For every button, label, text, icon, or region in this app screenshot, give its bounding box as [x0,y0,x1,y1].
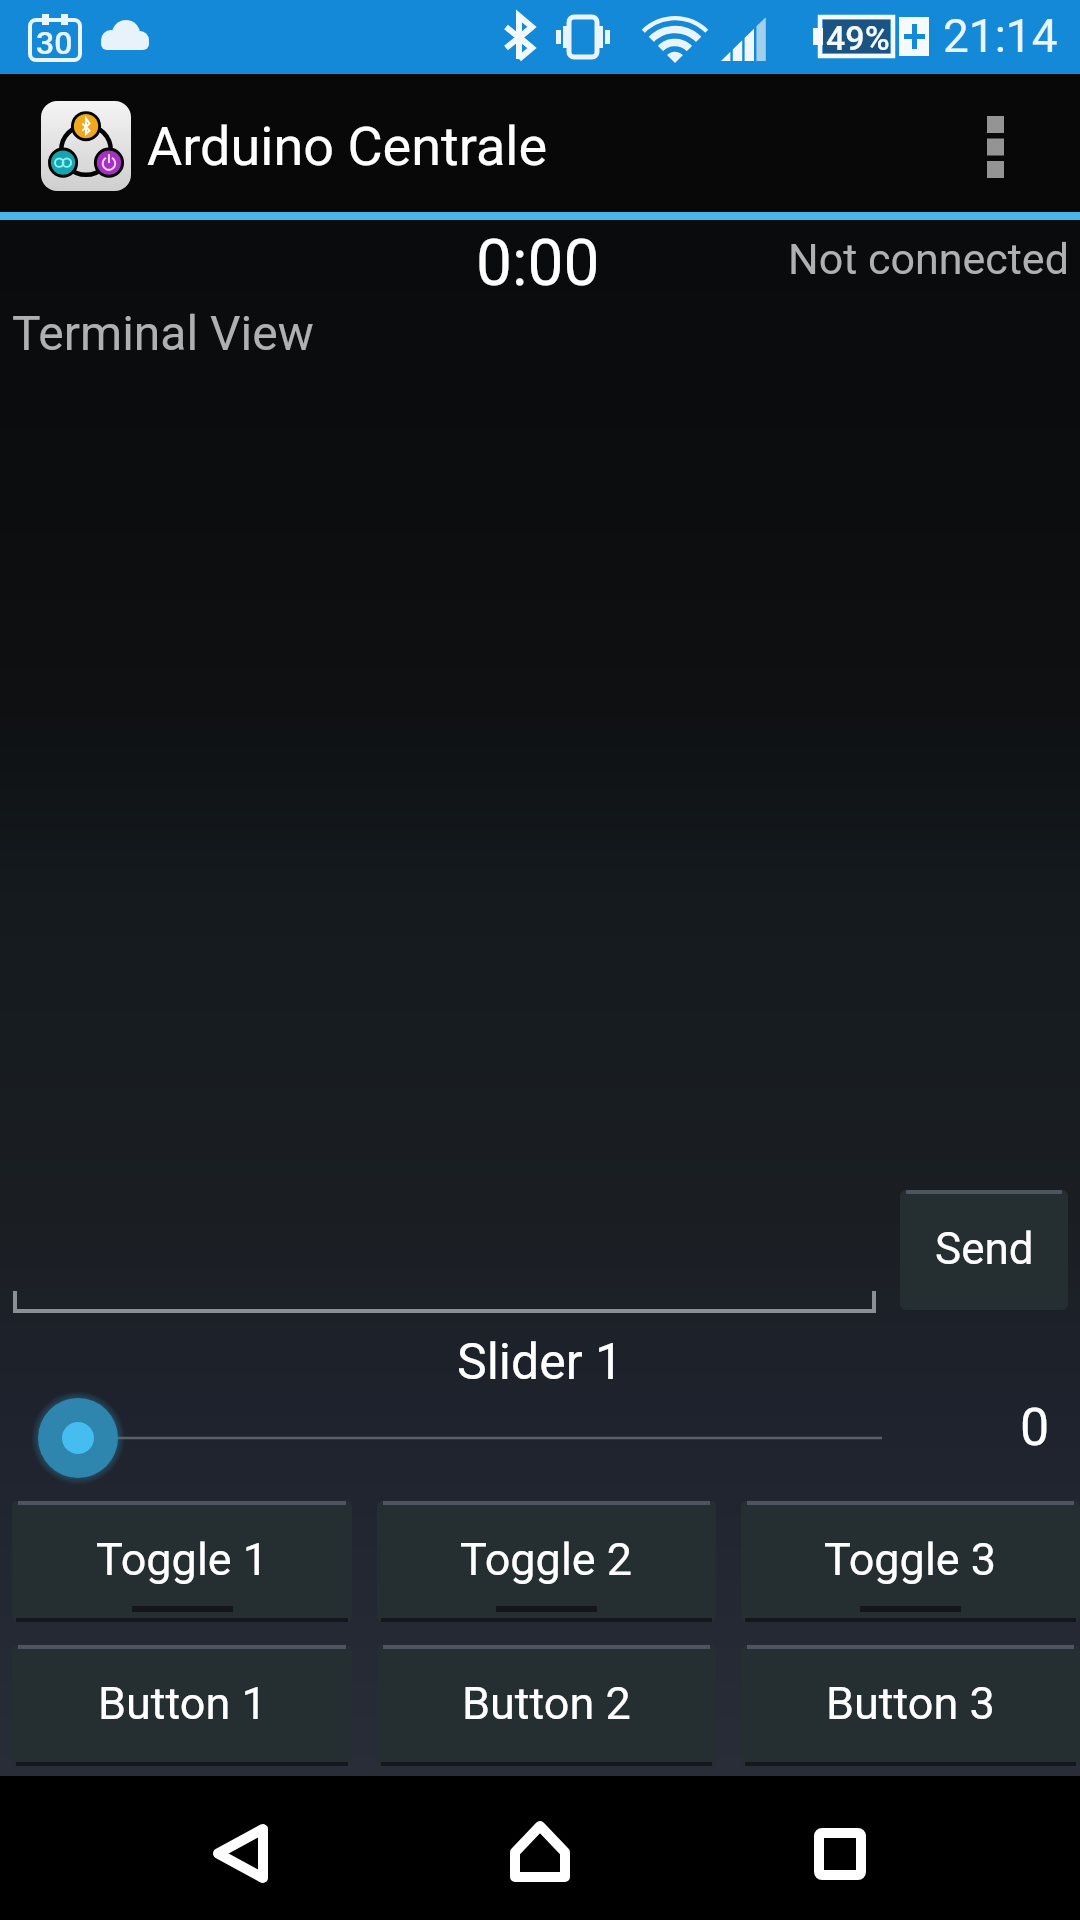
staticText: 0 [1020,1397,1050,1458]
staticText: Slider 1 [457,1333,624,1392]
button[interactable]: Button 2 [377,1645,716,1766]
staticText: Terminal View [12,305,314,361]
staticText: Toggle 3 [824,1533,997,1586]
button[interactable]: Recents [750,1776,930,1920]
button[interactable]: Toggle 3 [741,1501,1080,1622]
staticText: 49% [826,18,890,58]
staticText: 21:14 [943,9,1058,63]
staticText: 30 [36,24,73,62]
staticText: Toggle 2 [460,1533,633,1586]
button[interactable]: Toggle 1 [12,1501,352,1622]
staticText: 0:00 [476,226,600,301]
button[interactable]: Back [150,1776,330,1920]
button[interactable]: Send [900,1190,1068,1310]
staticText: Send [935,1223,1034,1275]
staticText: Toggle 1 [96,1533,269,1586]
staticText: Arduino Centrale [147,115,910,178]
button[interactable]: More options [910,74,1080,212]
staticText: Button 3 [826,1677,995,1730]
button[interactable]: Home [450,1776,630,1920]
staticText: Button 2 [462,1677,631,1730]
button[interactable] [0,1393,1080,1483]
button[interactable]: Button 3 [741,1645,1080,1766]
staticText: Button 1 [98,1677,267,1730]
button[interactable]: Toggle 2 [377,1501,716,1622]
button[interactable]: Button 1 [12,1645,352,1766]
staticText: Not connected [788,234,1069,284]
